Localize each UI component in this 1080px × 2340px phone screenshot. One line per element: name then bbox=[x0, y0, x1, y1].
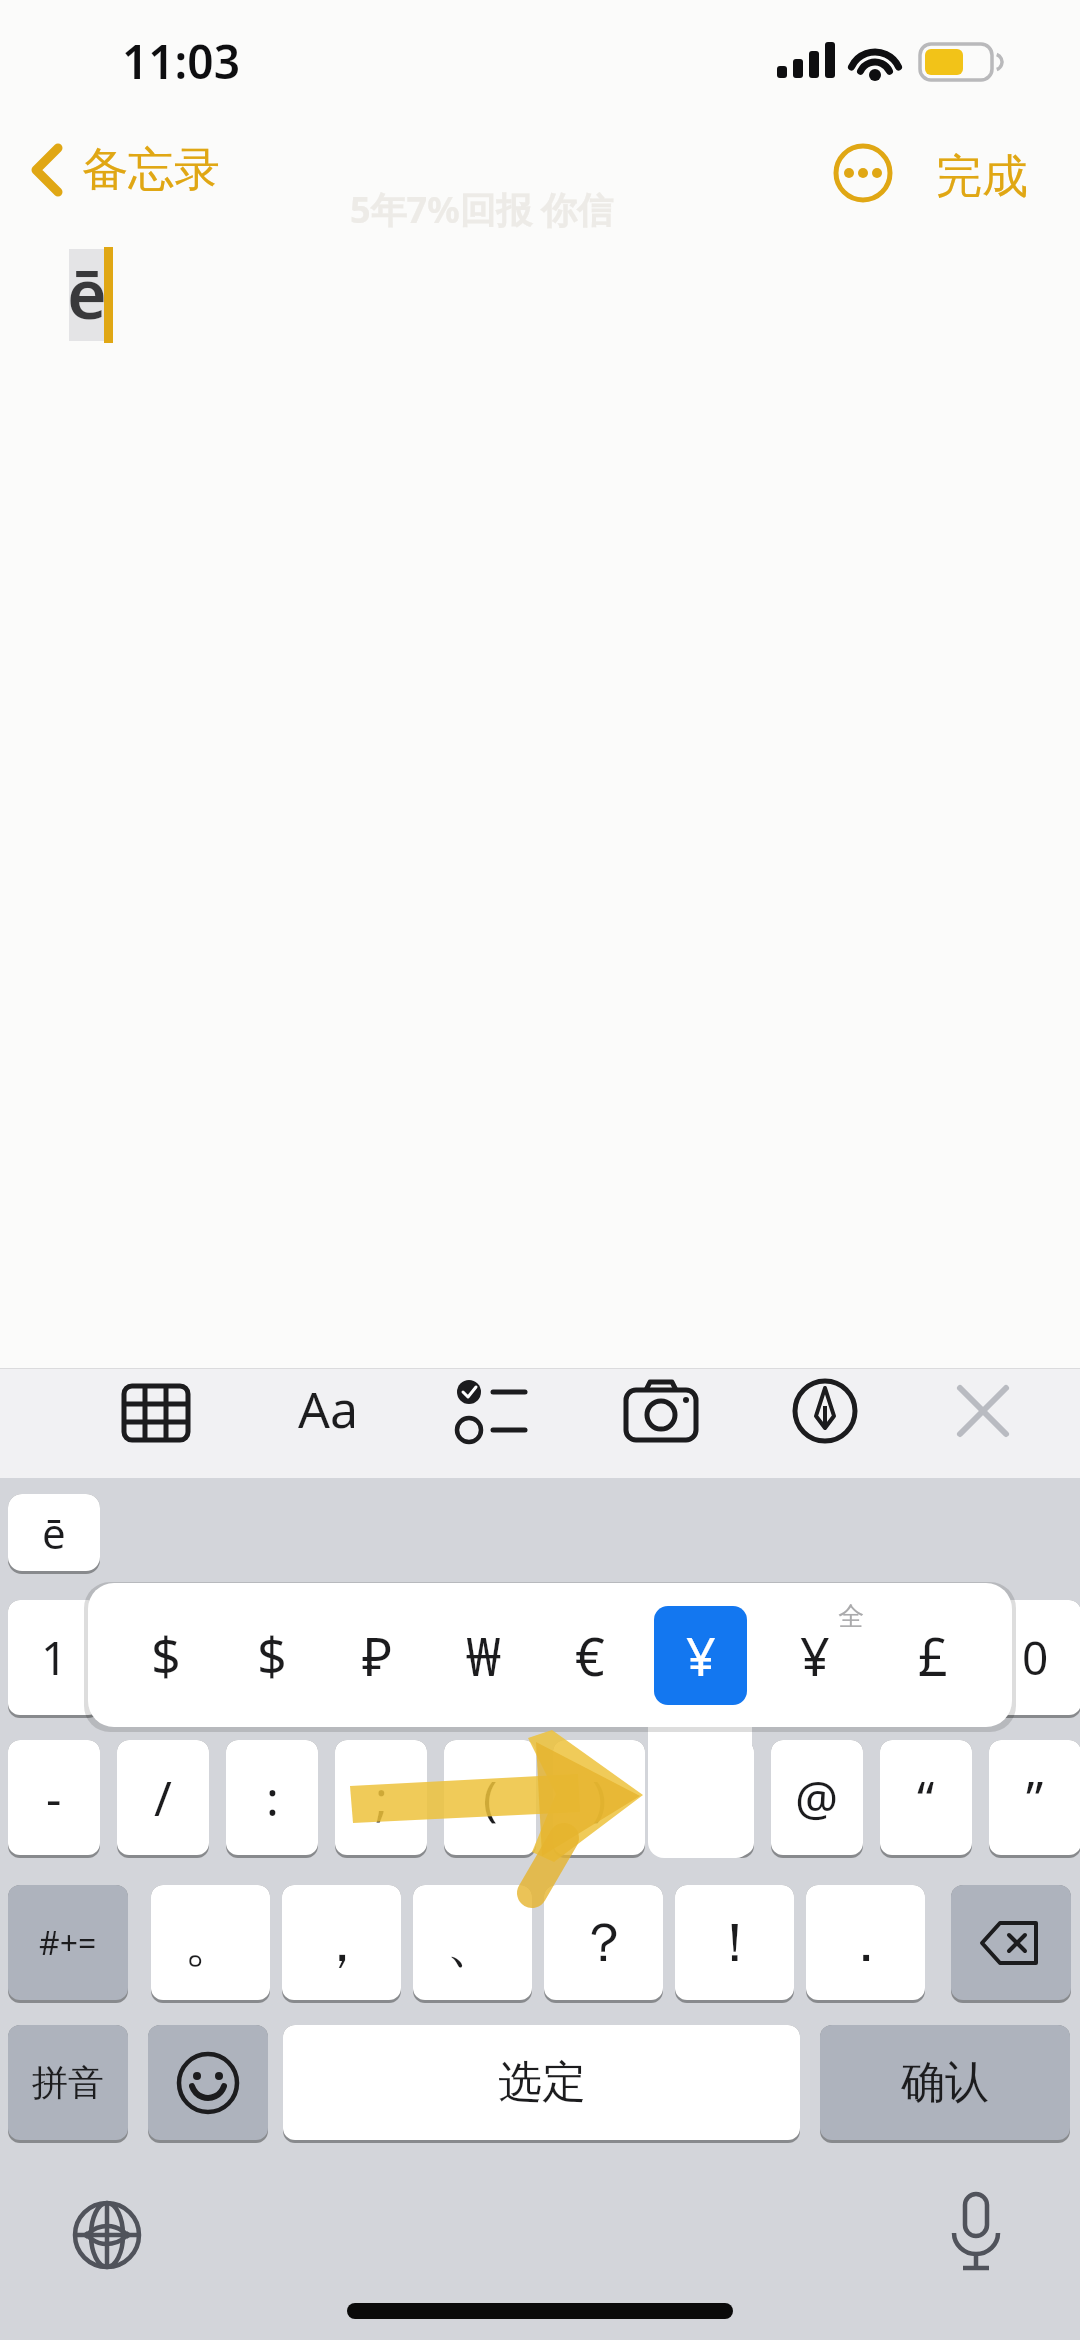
staticText: 6 bbox=[586, 1626, 613, 1689]
button[interactable]: ． bbox=[806, 1885, 925, 2000]
button[interactable]: 8 bbox=[771, 1600, 863, 1715]
button[interactable]: ？ bbox=[544, 1885, 663, 2000]
button[interactable]: 7 bbox=[662, 1600, 754, 1715]
button[interactable] bbox=[72, 2200, 142, 2270]
button[interactable] bbox=[952, 1380, 1014, 1442]
button[interactable]: ) bbox=[553, 1740, 645, 1855]
button[interactable]: : bbox=[226, 1740, 318, 1855]
staticText: ¥ bbox=[686, 1620, 716, 1691]
button[interactable]: $ bbox=[257, 1620, 287, 1691]
staticText: 拼音 bbox=[32, 2060, 104, 2105]
staticText: ē bbox=[42, 1504, 66, 1561]
button[interactable]: ; bbox=[335, 1740, 427, 1855]
staticText: : bbox=[266, 1765, 279, 1830]
button[interactable]: 选定 bbox=[283, 2025, 800, 2140]
button[interactable]: 备忘录 bbox=[28, 140, 220, 200]
staticText: “ bbox=[917, 1765, 935, 1830]
button[interactable]: ē bbox=[8, 1494, 100, 1571]
staticText: 0 bbox=[1022, 1626, 1049, 1689]
staticText: 完成 bbox=[936, 148, 1028, 206]
button[interactable]: 0 bbox=[989, 1600, 1080, 1715]
button[interactable]: ( bbox=[444, 1740, 536, 1855]
button[interactable]: 5 bbox=[444, 1600, 536, 1715]
staticText: Aa bbox=[298, 1375, 358, 1443]
button[interactable]: 完成 bbox=[936, 148, 1028, 206]
staticText: 备忘录 bbox=[82, 141, 220, 199]
button[interactable]: 6 bbox=[553, 1600, 645, 1715]
staticText: ！ bbox=[708, 1909, 762, 1977]
button[interactable]: ！ bbox=[675, 1885, 794, 2000]
staticText: 确认 bbox=[901, 2055, 989, 2110]
button[interactable]: 确认 bbox=[820, 2025, 1070, 2140]
button[interactable]: € bbox=[575, 1620, 605, 1691]
staticText: / bbox=[154, 1765, 172, 1830]
button[interactable]: 4 bbox=[335, 1600, 427, 1715]
button[interactable]: #+= bbox=[8, 1885, 128, 2000]
button[interactable]: 9 bbox=[880, 1600, 972, 1715]
button[interactable] bbox=[951, 1885, 1071, 2000]
staticText: 2 bbox=[150, 1626, 177, 1689]
button[interactable]: ¥ bbox=[800, 1620, 830, 1691]
button[interactable] bbox=[832, 142, 894, 204]
button[interactable]: £ bbox=[918, 1620, 948, 1691]
button[interactable]: ¥ bbox=[654, 1606, 747, 1705]
button[interactable]: ₽ bbox=[362, 1620, 393, 1691]
button[interactable]: ₩ bbox=[466, 1620, 501, 1691]
staticText: 选定 bbox=[498, 2055, 586, 2110]
staticText: ē bbox=[67, 246, 107, 339]
button[interactable] bbox=[148, 2025, 268, 2140]
button[interactable] bbox=[662, 1740, 754, 1855]
staticText: 、 bbox=[446, 1909, 500, 1977]
staticText: 9 bbox=[913, 1626, 940, 1689]
staticText: - bbox=[46, 1765, 62, 1830]
button[interactable] bbox=[622, 1378, 700, 1444]
staticText: ( bbox=[483, 1765, 498, 1830]
button[interactable] bbox=[455, 1378, 529, 1448]
staticText: ？ bbox=[577, 1909, 631, 1977]
staticText: 1 bbox=[41, 1626, 68, 1689]
button[interactable]: $ bbox=[151, 1620, 181, 1691]
staticText: 5年7%回报 你信 bbox=[350, 185, 614, 234]
button[interactable]: 、 bbox=[413, 1885, 532, 2000]
button[interactable] bbox=[945, 2192, 1007, 2278]
staticText: @ bbox=[795, 1765, 839, 1830]
staticText: 。 bbox=[184, 1909, 238, 1977]
button[interactable]: - bbox=[8, 1740, 100, 1855]
staticText: 11:03 bbox=[122, 30, 240, 93]
button[interactable]: 2 bbox=[117, 1600, 209, 1715]
button[interactable]: 拼音 bbox=[8, 2025, 128, 2140]
staticText: 4 bbox=[368, 1626, 395, 1689]
button[interactable]: ” bbox=[989, 1740, 1080, 1855]
button[interactable]: 。 bbox=[151, 1885, 270, 2000]
staticText: 5 bbox=[477, 1626, 504, 1689]
staticText: ” bbox=[1026, 1765, 1044, 1830]
staticText: 全 bbox=[838, 1600, 864, 1633]
button[interactable]: Aa bbox=[288, 1374, 368, 1444]
button[interactable]: 1 bbox=[8, 1600, 100, 1715]
button[interactable]: “ bbox=[880, 1740, 972, 1855]
button[interactable]: / bbox=[117, 1740, 209, 1855]
button[interactable]: 3 bbox=[226, 1600, 318, 1715]
staticText: 7 bbox=[695, 1626, 722, 1689]
button[interactable] bbox=[790, 1376, 860, 1446]
button[interactable]: ， bbox=[282, 1885, 401, 2000]
staticText: ; bbox=[375, 1765, 388, 1830]
button[interactable]: @ bbox=[771, 1740, 863, 1855]
staticText: ) bbox=[592, 1765, 607, 1830]
staticText: ． bbox=[839, 1909, 893, 1977]
staticText: #+= bbox=[39, 1921, 97, 1965]
button[interactable] bbox=[118, 1380, 194, 1446]
staticText: ， bbox=[315, 1909, 369, 1977]
staticText: 3 bbox=[259, 1626, 286, 1689]
staticText: 8 bbox=[804, 1626, 831, 1689]
